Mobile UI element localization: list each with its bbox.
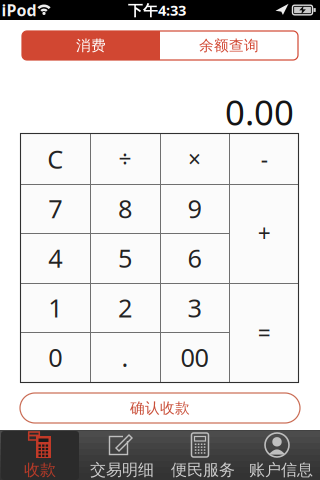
staticText: 6 <box>188 241 202 275</box>
staticText: 便民服务 <box>171 460 235 480</box>
staticText: 2 <box>118 291 132 324</box>
staticText: 余额查询 <box>199 36 259 54</box>
staticText: 1 <box>48 291 62 324</box>
staticText: 9 <box>188 192 202 225</box>
staticText: × <box>188 144 201 174</box>
staticText: 3 <box>188 291 202 324</box>
staticText: 下午4:33 <box>128 0 186 20</box>
staticText: 账户信息 <box>249 460 313 480</box>
staticText: = <box>258 317 271 347</box>
staticText: ÷ <box>118 144 131 174</box>
staticText: 00 <box>181 340 209 374</box>
staticText: 交易明细 <box>90 460 154 480</box>
staticText: . <box>121 340 128 374</box>
staticText: 消费 <box>76 36 106 54</box>
staticText: iPod <box>1 0 36 21</box>
staticText: 0 <box>48 340 62 374</box>
staticText: 0.00 <box>225 89 294 135</box>
staticText: + <box>258 218 271 248</box>
staticText: 收款 <box>24 460 56 480</box>
staticText: 8 <box>118 192 132 225</box>
staticText: C <box>47 142 63 176</box>
staticText: 确认收款 <box>130 399 190 417</box>
staticText: 7 <box>48 192 62 225</box>
staticText: 5 <box>118 241 132 275</box>
staticText: - <box>261 144 268 174</box>
staticText: 4 <box>48 241 62 275</box>
